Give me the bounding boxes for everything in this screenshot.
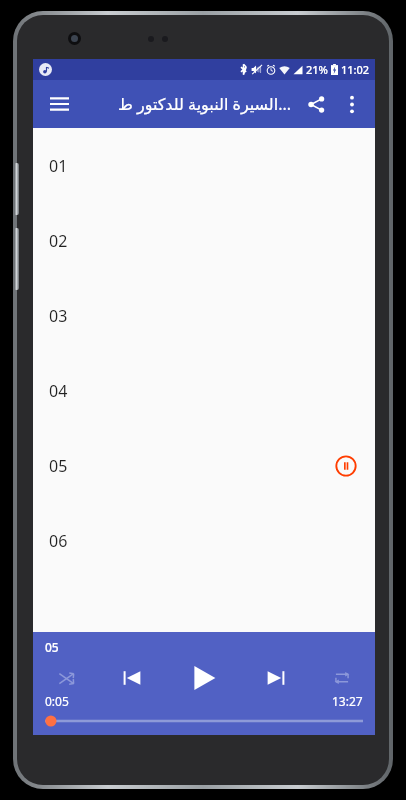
staticText: 21% (306, 62, 328, 77)
staticText: 01 (49, 155, 68, 177)
button[interactable]: 01 (33, 128, 375, 203)
button[interactable]: Play (183, 657, 225, 699)
staticText: السيرة النبوية للدكتور ط... (79, 93, 291, 115)
button[interactable]: Seek bar (45, 714, 363, 728)
staticText: 11:02 (341, 62, 370, 77)
staticText: 02 (49, 230, 68, 252)
button[interactable]: More options (335, 87, 369, 121)
button[interactable]: Shuffle (51, 663, 81, 693)
staticText: 0:05 (45, 693, 69, 709)
staticText: 03 (49, 305, 68, 327)
button[interactable]: Open navigation menu (39, 84, 79, 124)
button[interactable]: 03 (33, 278, 375, 353)
staticText: 05 (45, 639, 59, 655)
staticText: 13:27 (332, 693, 363, 709)
button[interactable]: Previous track (115, 661, 149, 695)
button[interactable]: Repeat (327, 663, 357, 693)
button[interactable]: 06 (33, 503, 375, 578)
button[interactable]: 05 (33, 428, 375, 503)
button[interactable]: Share (297, 85, 335, 123)
staticText: 04 (49, 380, 68, 402)
staticText: 05 (49, 455, 68, 477)
button[interactable]: Next track (259, 661, 293, 695)
button[interactable]: Pause (333, 453, 359, 479)
button[interactable]: 02 (33, 203, 375, 278)
button[interactable]: 04 (33, 353, 375, 428)
staticText: 06 (49, 530, 68, 552)
